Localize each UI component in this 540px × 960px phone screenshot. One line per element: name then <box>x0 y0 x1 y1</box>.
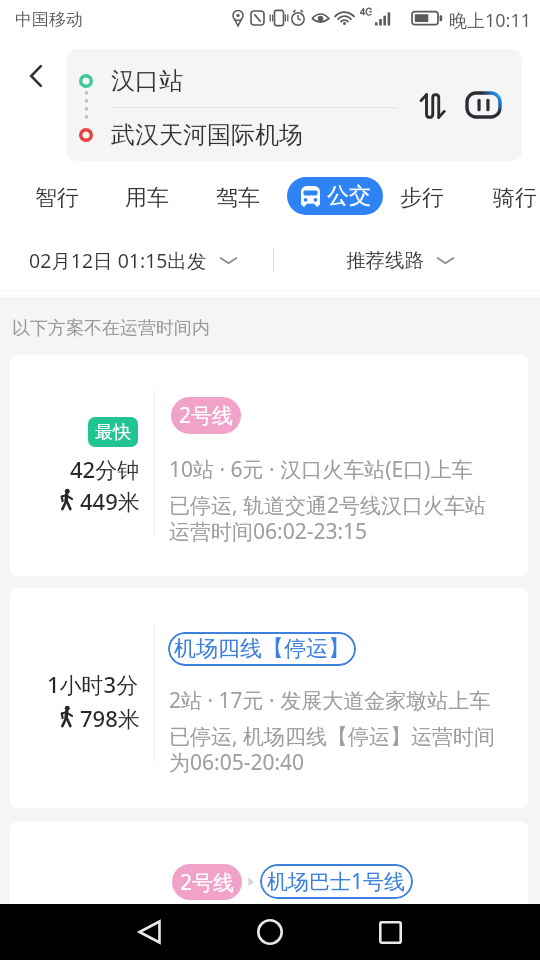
staticText: 武汉天河国际机场 <box>111 120 303 150</box>
button[interactable]: 02月12日 01:15出发 <box>23 238 244 282</box>
staticText: 1小时3分 <box>47 669 139 699</box>
button[interactable]: Home <box>242 904 298 960</box>
staticText: 机场四线【停运】 <box>174 635 350 663</box>
button[interactable]: 骑行 <box>482 172 540 224</box>
button[interactable]: Back <box>10 50 62 102</box>
button[interactable]: 汉口站 <box>66 53 396 108</box>
button[interactable]: Transit card <box>462 84 504 126</box>
staticText: 推荐线路 <box>346 248 424 273</box>
button[interactable]: Swap origin and destination <box>411 86 451 126</box>
button[interactable]: 1小时3分 <box>10 588 528 808</box>
staticText: 公交 <box>327 182 371 210</box>
staticText: 为06:05-20:40 <box>169 748 305 777</box>
staticText: 智行 <box>35 184 79 212</box>
staticText: 2号线 <box>179 401 234 430</box>
staticText: 用车 <box>125 184 169 212</box>
staticText: 运营时间06:02-23:15 <box>169 517 368 546</box>
staticText: 2号线 <box>180 868 235 897</box>
staticText: 骑行 <box>493 184 537 212</box>
staticText: 02月12日 01:15出发 <box>29 247 207 274</box>
button[interactable]: 步行 <box>389 172 454 224</box>
staticText: 中国移动 <box>15 9 83 30</box>
staticText: 42分钟 <box>70 454 140 484</box>
button[interactable]: 最快 <box>10 355 528 576</box>
button[interactable]: 2号线 <box>10 822 528 932</box>
staticText: 已停运, 机场四线【停运】运营时间 <box>169 722 496 751</box>
staticText: 汉口站 <box>111 66 183 96</box>
staticText: 以下方案不在运营时间内 <box>12 317 210 340</box>
button[interactable]: 驾车 <box>205 172 270 224</box>
button[interactable]: 智行 <box>24 172 89 224</box>
staticText: 798米 <box>80 703 140 733</box>
button[interactable]: 推荐线路 <box>340 238 461 282</box>
button[interactable]: Recent apps <box>362 904 418 960</box>
button[interactable]: Back <box>121 904 177 960</box>
staticText: 机场巴士1号线 <box>267 867 406 896</box>
staticText: 449米 <box>80 486 140 516</box>
staticText: 2站 · 17元 · 发展大道金家墩站上车 <box>169 686 491 715</box>
button[interactable]: 用车 <box>114 172 179 224</box>
staticText: 驾车 <box>216 184 260 212</box>
staticText: 步行 <box>400 184 444 212</box>
staticText: 晚上10:11 <box>449 8 532 33</box>
staticText: 10站 · 6元 · 汉口火车站(E口)上车 <box>169 455 473 484</box>
button[interactable]: 公交 <box>287 177 383 215</box>
staticText: 已停运, 轨道交通2号线汉口火车站 <box>169 491 487 520</box>
button[interactable]: 武汉天河国际机场 <box>66 108 396 161</box>
staticText: 最快 <box>95 421 131 444</box>
